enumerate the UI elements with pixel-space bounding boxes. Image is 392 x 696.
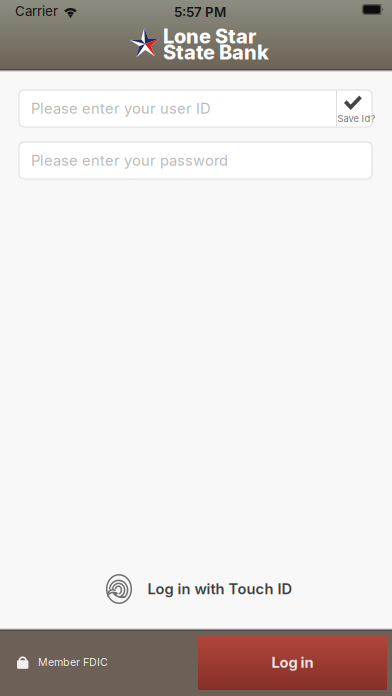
staticText: Log in with Touch ID xyxy=(147,580,292,598)
button[interactable]: Log in with Touch ID xyxy=(104,572,292,606)
staticText: Save Id? xyxy=(337,113,375,124)
button[interactable]: Save Id? xyxy=(336,91,372,126)
button[interactable]: Log in xyxy=(198,635,387,690)
staticText: 5:57 PM xyxy=(174,4,226,20)
staticText: Please enter your password xyxy=(31,152,228,169)
staticText: State Bank xyxy=(163,40,269,64)
staticText: Please enter your user ID xyxy=(31,100,211,117)
button[interactable]: Member FDIC xyxy=(17,647,137,677)
staticText: Log in xyxy=(271,654,313,671)
staticText: Lone Star xyxy=(163,24,256,48)
staticText: Member FDIC xyxy=(38,655,108,668)
staticText: Carrier xyxy=(15,3,58,19)
